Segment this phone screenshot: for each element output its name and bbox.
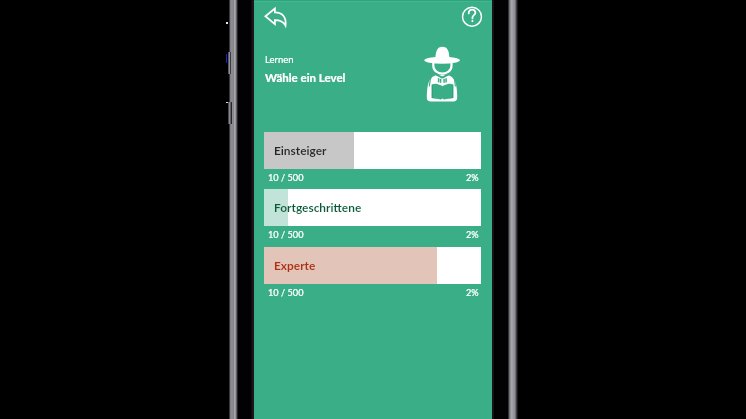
staticText: Experte xyxy=(274,258,316,272)
staticText: 10 / 500 xyxy=(268,287,304,298)
button[interactable]: Help xyxy=(457,2,487,32)
staticText: Einsteiger xyxy=(274,143,327,157)
button[interactable]: Back xyxy=(258,2,288,32)
button[interactable]: Fortgeschrittene xyxy=(264,189,481,226)
staticText: 10 / 500 xyxy=(268,172,304,183)
button[interactable]: Experte xyxy=(264,247,481,284)
staticText: Lernen xyxy=(265,54,294,65)
staticText: Wähle ein Level xyxy=(265,71,346,85)
staticText: 10 / 500 xyxy=(268,229,304,240)
staticText: 2% xyxy=(466,229,479,240)
staticText: 2% xyxy=(466,287,479,298)
button[interactable]: Einsteiger xyxy=(264,132,481,169)
staticText: Fortgeschrittene xyxy=(274,200,362,214)
staticText: 2% xyxy=(466,172,479,183)
